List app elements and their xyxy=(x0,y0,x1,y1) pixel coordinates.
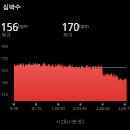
staticText: 3:26:15 xyxy=(118,106,130,111)
staticText: 1:22:30 xyxy=(51,106,65,111)
staticText: 0:00 xyxy=(10,106,18,111)
staticText: 41:15 xyxy=(31,106,42,111)
staticText: bpm xyxy=(79,23,89,29)
staticText: 170 xyxy=(62,20,80,34)
staticText: 시간(시:분:초) xyxy=(56,118,84,124)
staticText: 170 xyxy=(1,56,8,61)
staticText: 156 xyxy=(1,20,19,34)
staticText: 150 xyxy=(1,68,8,73)
staticText: 심박수 xyxy=(3,3,21,11)
staticText: 2:03:45 xyxy=(73,106,87,111)
staticText: 최대 xyxy=(63,32,72,38)
staticText: 130 xyxy=(1,80,8,85)
staticText: 평균 xyxy=(2,32,11,38)
staticText: 110 xyxy=(1,92,8,97)
staticText: 190 xyxy=(1,44,8,49)
staticText: bpm xyxy=(18,23,28,29)
staticText: 2:45:00 xyxy=(96,106,110,111)
